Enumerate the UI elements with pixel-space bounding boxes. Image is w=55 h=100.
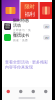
button[interactable]: Apps [27,87,39,96]
staticText: 福利 [24,11,34,18]
button[interactable]: 查看全部活动 · 更多精彩内容等你来发现 [5,62,49,67]
button[interactable]: Search [39,87,52,96]
button[interactable]: Promo card 3 [39,2,52,19]
staticText: 限时 [24,3,34,10]
button[interactable]: Today [2,87,14,96]
staticText: 微信读书 [13,33,29,38]
staticText: GET [44,36,48,39]
button[interactable]: Games [14,87,27,96]
staticText: 查看全部活动 · 更多精彩内容等你来发现 [5,59,48,70]
button[interactable]: Promo card [1,0,19,21]
staticText: 阅读 · 免费 [13,38,28,42]
button[interactable]: 🎬 [4,22,50,31]
staticText: 立即参与 · 免费领取 [13,28,31,35]
button[interactable]: 微信读书 [4,33,50,42]
staticText: 🎬 [4,23,11,30]
button[interactable]: Promo card 2 [20,2,38,19]
staticText: GET [44,25,48,28]
staticText: 限时特惠活动 [13,18,29,28]
